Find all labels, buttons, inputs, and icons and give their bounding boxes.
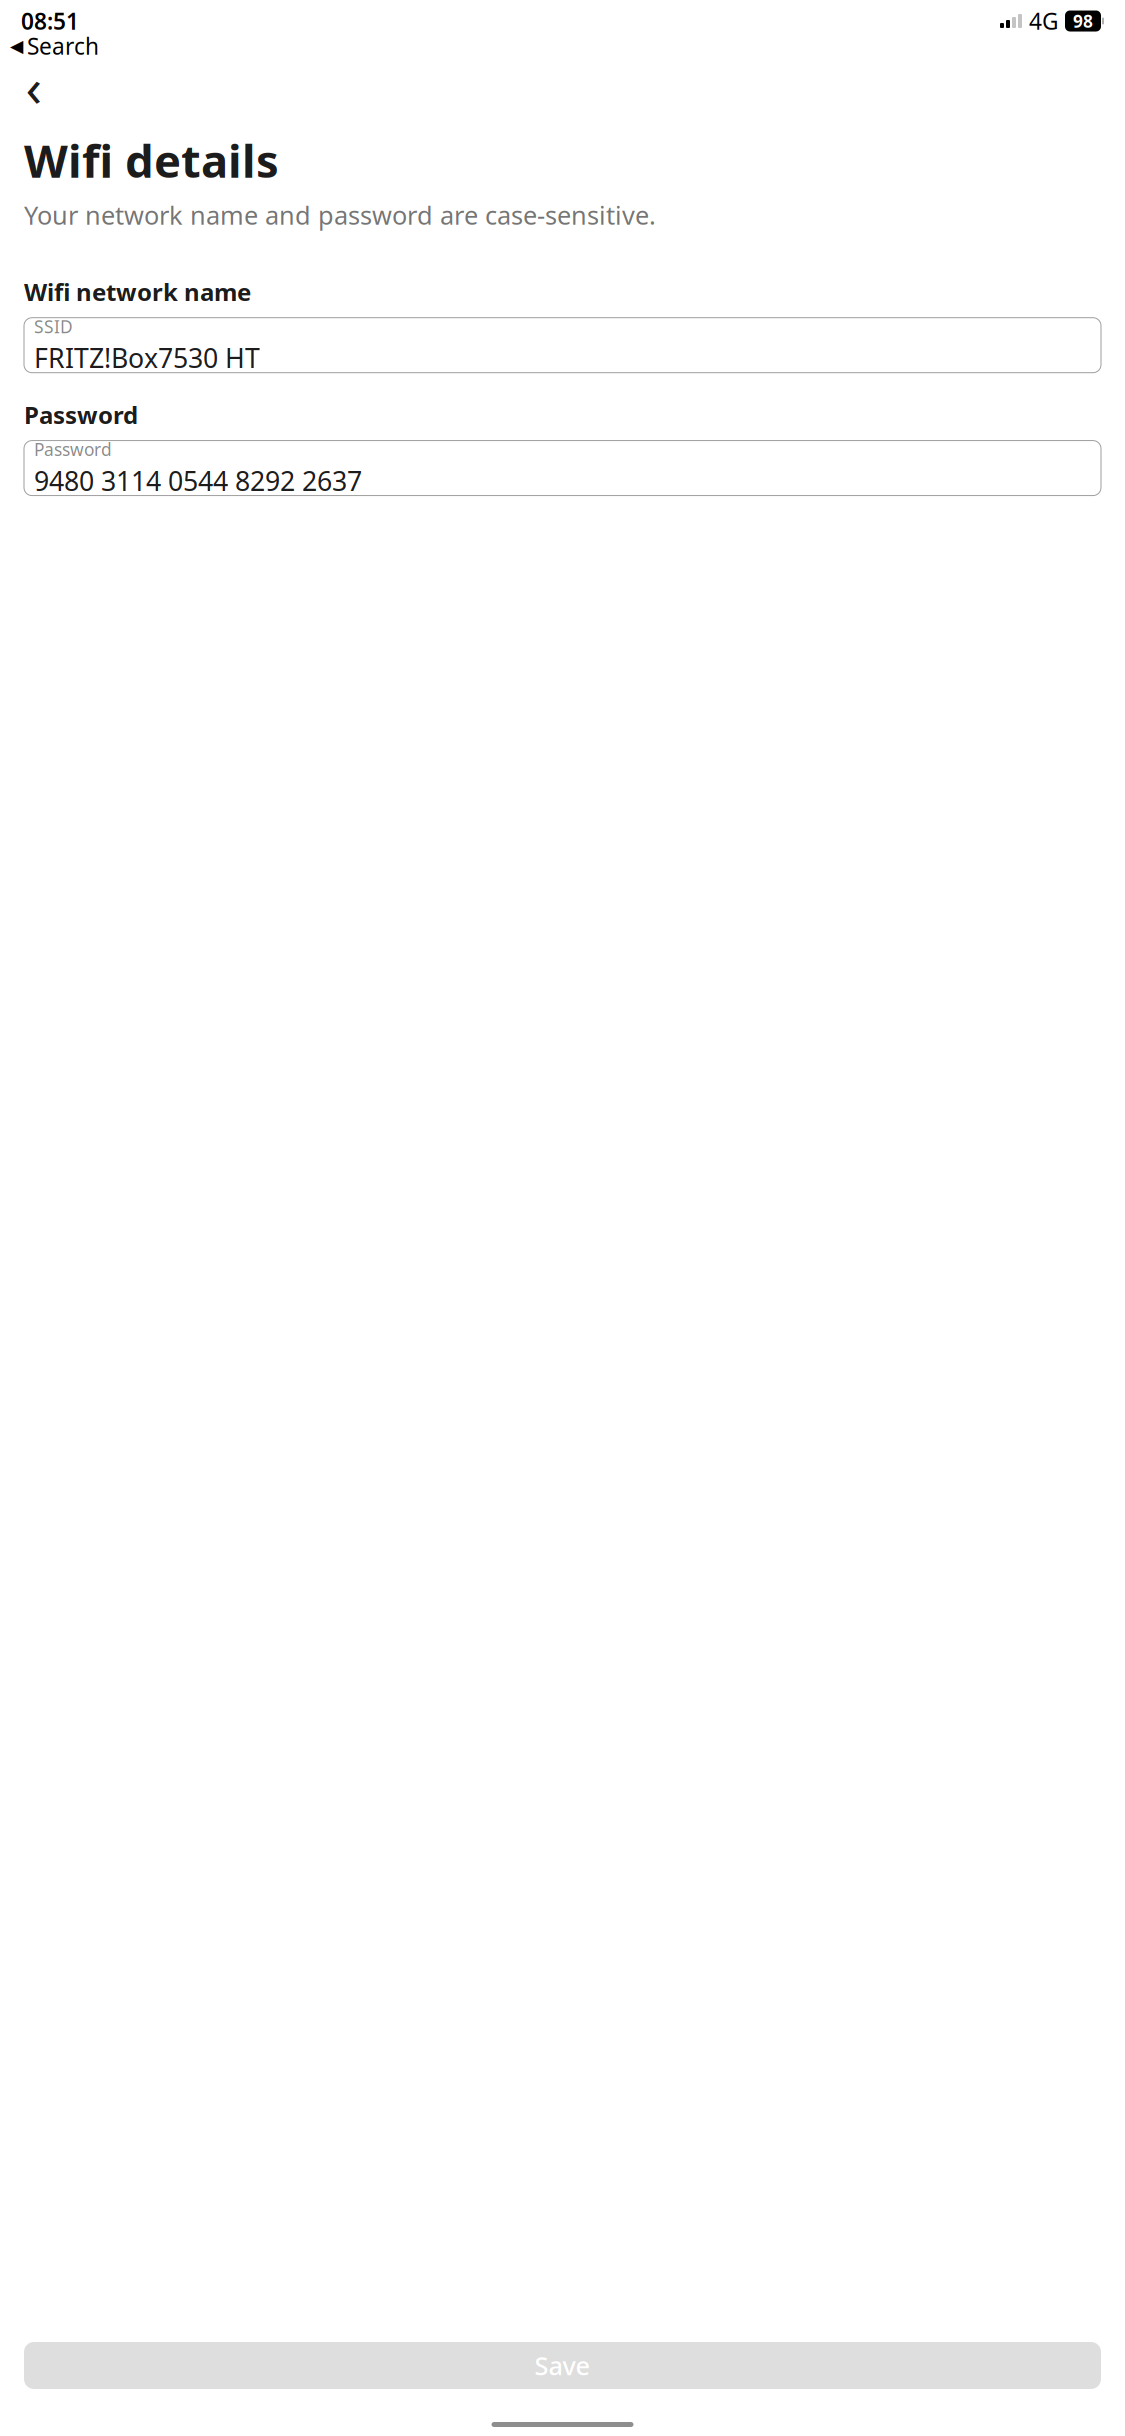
staticText: Wifi network name <box>24 276 251 308</box>
button[interactable]: Password <box>24 441 1101 496</box>
staticText: 4G <box>1029 6 1059 36</box>
staticText: SSID <box>34 315 73 338</box>
staticText: Save <box>534 2349 590 2382</box>
staticText: Search <box>27 31 99 61</box>
staticText: Wifi details <box>24 130 279 190</box>
staticText: 9480 3114 0544 8292 2637 <box>34 463 362 498</box>
button[interactable]: ◀ <box>2 34 107 58</box>
button[interactable]: SSID <box>24 318 1101 373</box>
staticText: FRITZ!Box7530 HT <box>34 340 260 375</box>
staticText: 98 <box>1073 9 1093 32</box>
button[interactable]: Back <box>12 64 56 108</box>
staticText: Password <box>34 438 112 461</box>
staticText: ‹ <box>25 51 42 121</box>
staticText: ◀ <box>10 36 23 56</box>
staticText: 08:51 <box>21 6 79 36</box>
staticText: Your network name and password are case-… <box>24 198 656 232</box>
staticText: Password <box>24 399 138 431</box>
